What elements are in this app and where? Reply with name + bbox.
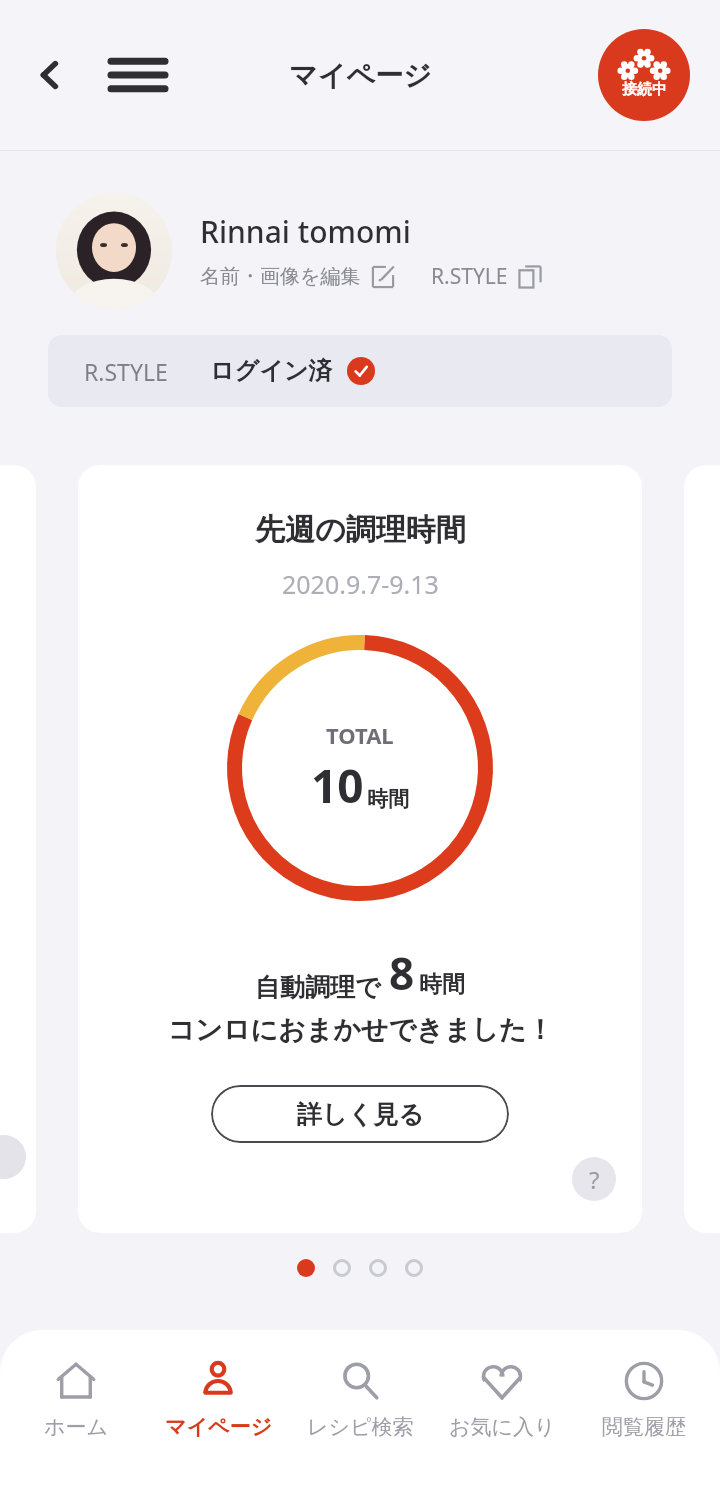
button[interactable]: Menu [106, 43, 170, 107]
staticText: R.STYLE [84, 356, 168, 387]
staticText: ホーム [44, 1414, 108, 1440]
button[interactable]: 名前・画像を編集 [200, 264, 395, 289]
staticText: レシピ検索 [307, 1414, 414, 1440]
staticText: 詳しく見る [297, 1099, 424, 1130]
staticText: マイページ [165, 1414, 272, 1440]
staticText: R.STYLE [431, 262, 508, 291]
button[interactable]: お気に入り [436, 1356, 568, 1444]
button[interactable]: 接続中 [598, 29, 690, 121]
staticText: Rinnai tomomi [200, 211, 411, 252]
button[interactable]: 詳しく見る [211, 1085, 509, 1143]
staticText: 自動調理で [255, 972, 381, 1003]
staticText: 10 [311, 754, 364, 817]
button[interactable]: ホーム [10, 1356, 142, 1444]
button[interactable]: Help [572, 1157, 616, 1201]
button[interactable]: R.STYLE [48, 335, 672, 407]
button[interactable] [0, 465, 36, 1233]
button[interactable]: 先週の調理時間 [78, 465, 642, 1233]
staticText: 2020.9.7-9.13 [282, 567, 439, 601]
button[interactable]: マイページ [152, 1356, 284, 1444]
staticText: コンロにおまかせできました！ [167, 1013, 554, 1047]
staticText: ? [589, 1163, 600, 1196]
staticText: 時間 [367, 786, 409, 812]
staticText: お気に入り [449, 1414, 556, 1440]
staticText: 接続中 [622, 80, 667, 99]
staticText: 閲覧履歴 [602, 1414, 686, 1440]
staticText: ログイン済 [210, 356, 333, 386]
button[interactable]: R.STYLE [431, 262, 542, 291]
staticText: 名前・画像を編集 [200, 264, 361, 289]
staticText: マイページ [289, 58, 432, 93]
button[interactable]: Back [22, 47, 78, 103]
button[interactable]: Profile photo [56, 193, 172, 309]
button[interactable]: レシピ検索 [294, 1356, 426, 1444]
staticText: TOTAL [326, 720, 394, 750]
staticText: 時間 [419, 970, 465, 999]
staticText: 8 [389, 943, 415, 1003]
button[interactable]: 閲覧履歴 [578, 1356, 710, 1444]
staticText: 先週の調理時間 [255, 511, 466, 549]
